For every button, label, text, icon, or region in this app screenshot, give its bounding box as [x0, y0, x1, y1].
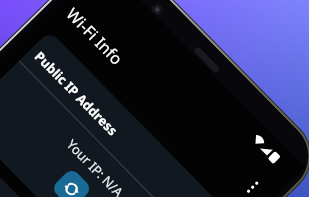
- button[interactable]: [0, 127, 134, 197]
- staticText: Your IP: N/A: [0, 69, 193, 197]
- staticText: Public IP Address: [31, 47, 122, 139]
- staticText: Wi-Fi Info: [62, 3, 128, 70]
- button[interactable]: Refresh: [50, 167, 93, 197]
- button[interactable]: Public IP Address: [0, 30, 232, 197]
- button[interactable]: More options: [234, 169, 271, 197]
